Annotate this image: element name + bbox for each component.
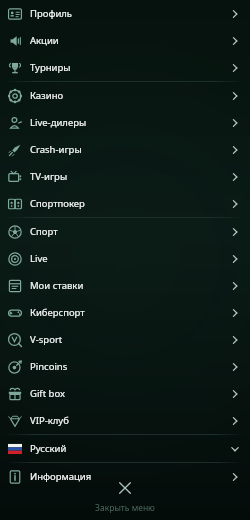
staticText: Казино	[30, 89, 64, 102]
button[interactable]: Live	[0, 245, 250, 272]
button[interactable]: Crash-игры	[0, 136, 250, 163]
staticText: Турниры	[30, 61, 71, 74]
button[interactable]: Русский	[0, 435, 250, 462]
button[interactable]: V-sport	[0, 326, 250, 353]
button[interactable]: VIP-клуб	[0, 407, 250, 434]
staticText: Спорт	[30, 225, 58, 238]
staticText: TV-игры	[30, 170, 68, 183]
button[interactable]: Информация	[0, 463, 250, 490]
button[interactable]: Pincoins	[0, 353, 250, 380]
staticText: Информация	[30, 470, 92, 483]
button[interactable]: Gift box	[0, 380, 250, 407]
button[interactable]: Live-дилеры	[0, 109, 250, 136]
staticText: Live-дилеры	[30, 116, 87, 129]
staticText: Мои ставки	[30, 279, 84, 292]
staticText: Закрыть меню	[95, 502, 155, 514]
staticText: Акции	[30, 34, 59, 47]
button[interactable]: Акции	[0, 27, 250, 54]
staticText: Gift box	[30, 387, 65, 400]
button[interactable]: Турниры	[0, 54, 250, 81]
other: Закрыть меню	[114, 477, 136, 499]
button[interactable]: Спортпокер	[0, 190, 250, 217]
staticText: Crash-игры	[30, 143, 82, 156]
staticText: V-sport	[30, 333, 63, 346]
button[interactable]: TV-игры	[0, 163, 250, 190]
staticText: Киберспорт	[30, 306, 85, 319]
staticText: Live	[30, 252, 48, 265]
staticText: VIP-клуб	[30, 414, 69, 427]
staticText: Профиль	[30, 7, 73, 20]
button[interactable]: Спорт	[0, 218, 250, 245]
button[interactable]: Мои ставки	[0, 272, 250, 299]
staticText: Pincoins	[30, 360, 68, 373]
button[interactable]: Казино	[0, 82, 250, 109]
button[interactable]: Киберспорт	[0, 299, 250, 326]
button[interactable]: Профиль	[0, 0, 250, 27]
button[interactable]: Закрыть меню	[0, 477, 250, 520]
staticText: Русский	[30, 442, 67, 455]
staticText: Спортпокер	[30, 197, 85, 210]
